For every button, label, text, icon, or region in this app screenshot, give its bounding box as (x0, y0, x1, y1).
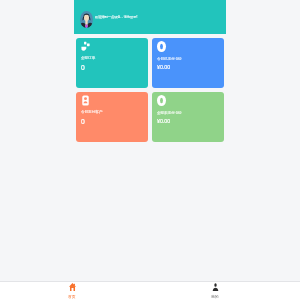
staticText: 全部未支付 (元) (157, 110, 182, 115)
button[interactable]: 欢迎来到一点钱包，请先登录! (74, 0, 226, 34)
staticText: 全部订单 (81, 56, 96, 60)
button[interactable]: 全部未支付 (元) (152, 92, 224, 142)
button[interactable]: 我的 (195, 281, 235, 300)
staticText: 今日已支付 (元) (157, 56, 182, 61)
button[interactable]: 今日支付客户 (76, 92, 148, 142)
button[interactable]: 首页 (52, 281, 92, 300)
staticText: 0 (81, 117, 85, 126)
staticText: 首页 (68, 294, 76, 299)
staticText: 我的 (211, 294, 219, 299)
button[interactable]: 今日已支付 (元) (152, 38, 224, 88)
staticText: 今日支付客户 (81, 110, 103, 114)
staticText: ¥0.00 (157, 117, 171, 124)
staticText: ¥0.00 (157, 63, 171, 70)
staticText: 0 (81, 63, 85, 72)
staticText: 欢迎来到一点钱包，请先登录! (95, 15, 138, 19)
button[interactable]: 全部订单 (76, 38, 148, 88)
